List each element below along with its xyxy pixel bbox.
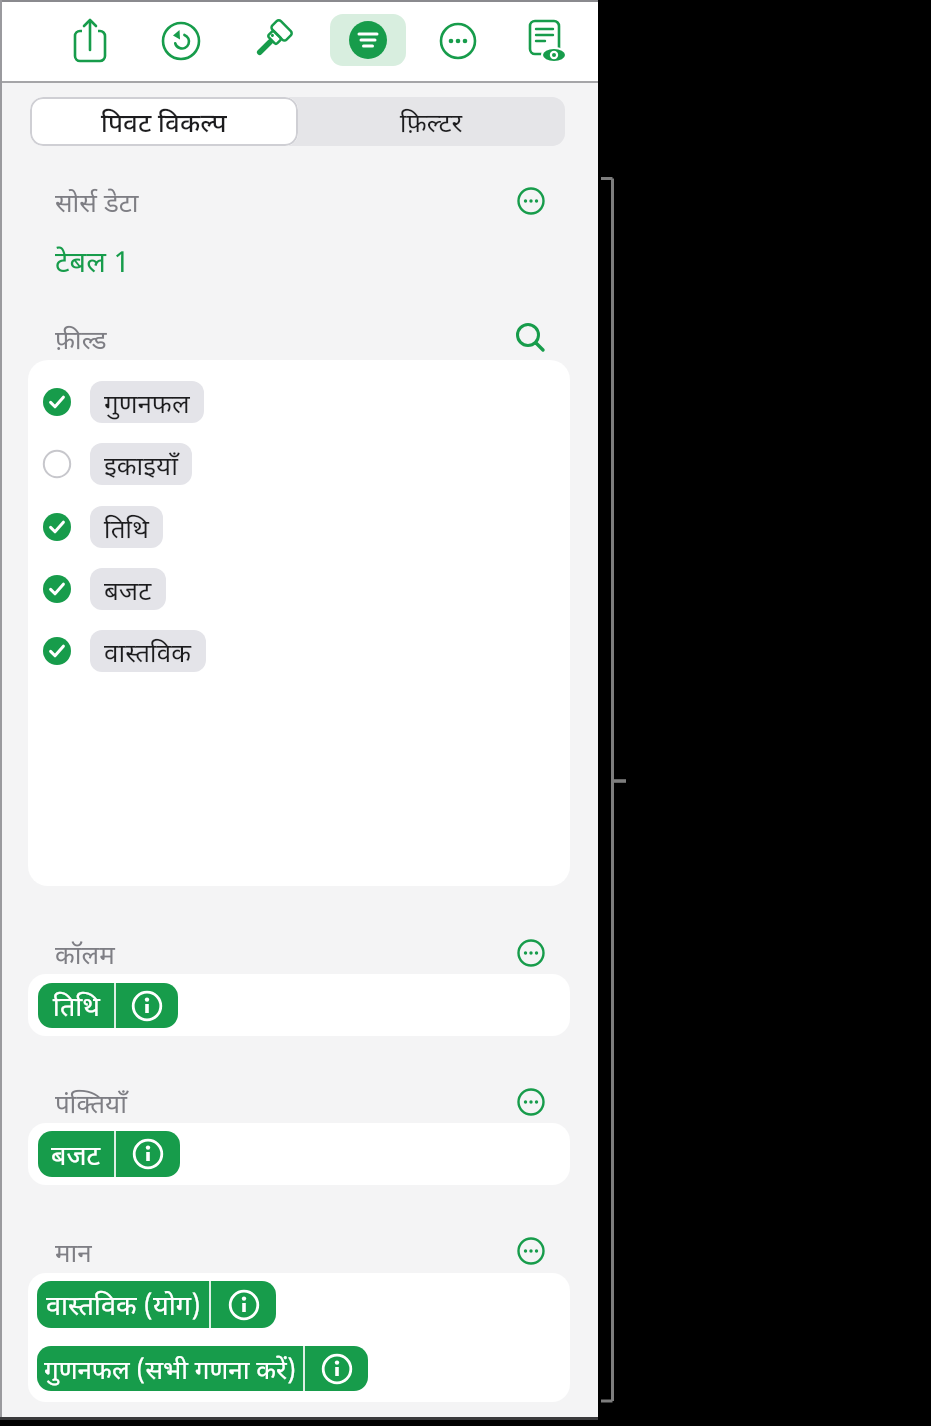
staticText: फ़िल्टर xyxy=(400,104,463,139)
staticText: गुणनफल (सभी गणना करें) xyxy=(44,1351,296,1386)
staticText: टेबल 1 xyxy=(55,241,130,280)
button[interactable]: पिवट विकल्प xyxy=(30,97,298,146)
staticText: बजट xyxy=(104,572,152,607)
button[interactable] xyxy=(515,1086,547,1118)
button[interactable]: वास्तविक (योग) xyxy=(37,1281,276,1328)
button[interactable]: तिथि xyxy=(38,983,178,1028)
button[interactable] xyxy=(245,15,297,67)
button[interactable]: तिथि xyxy=(90,506,163,548)
button[interactable] xyxy=(42,574,72,604)
button[interactable]: इकाइयाँ xyxy=(90,443,192,485)
staticText: तिथि xyxy=(53,987,100,1024)
staticText: पंक्तियाँ xyxy=(55,1085,127,1120)
button[interactable] xyxy=(155,15,207,67)
button[interactable] xyxy=(513,320,549,356)
staticText: बजट xyxy=(51,1136,101,1173)
button[interactable] xyxy=(515,937,547,969)
staticText: पिवट विकल्प xyxy=(101,104,227,139)
button[interactable] xyxy=(432,15,484,67)
button[interactable]: बजट xyxy=(38,1131,180,1177)
button[interactable]: गुणनफल xyxy=(90,381,204,423)
button[interactable]: बजट xyxy=(90,568,166,610)
button[interactable] xyxy=(330,14,406,66)
staticText: फ़ील्ड xyxy=(55,321,107,356)
button[interactable] xyxy=(519,15,571,67)
staticText: तिथि xyxy=(104,510,149,545)
staticText: कॉलम xyxy=(55,936,115,971)
button[interactable] xyxy=(42,387,72,417)
button[interactable]: गुणनफल (सभी गणना करें) xyxy=(37,1346,368,1391)
staticText: मान xyxy=(55,1234,92,1269)
staticText: गुणनफल xyxy=(104,385,190,420)
staticText: सोर्स डेटा xyxy=(55,184,139,219)
staticText: वास्तविक xyxy=(104,634,192,669)
button[interactable]: वास्तविक xyxy=(90,630,206,672)
button[interactable] xyxy=(42,512,72,542)
button[interactable] xyxy=(64,15,116,67)
staticText: इकाइयाँ xyxy=(104,447,178,482)
button[interactable] xyxy=(515,1235,547,1267)
button[interactable] xyxy=(42,636,72,666)
button[interactable]: फ़िल्टर xyxy=(298,97,565,146)
button[interactable] xyxy=(42,449,72,479)
button[interactable] xyxy=(515,185,547,217)
staticText: वास्तविक (योग) xyxy=(46,1286,201,1323)
